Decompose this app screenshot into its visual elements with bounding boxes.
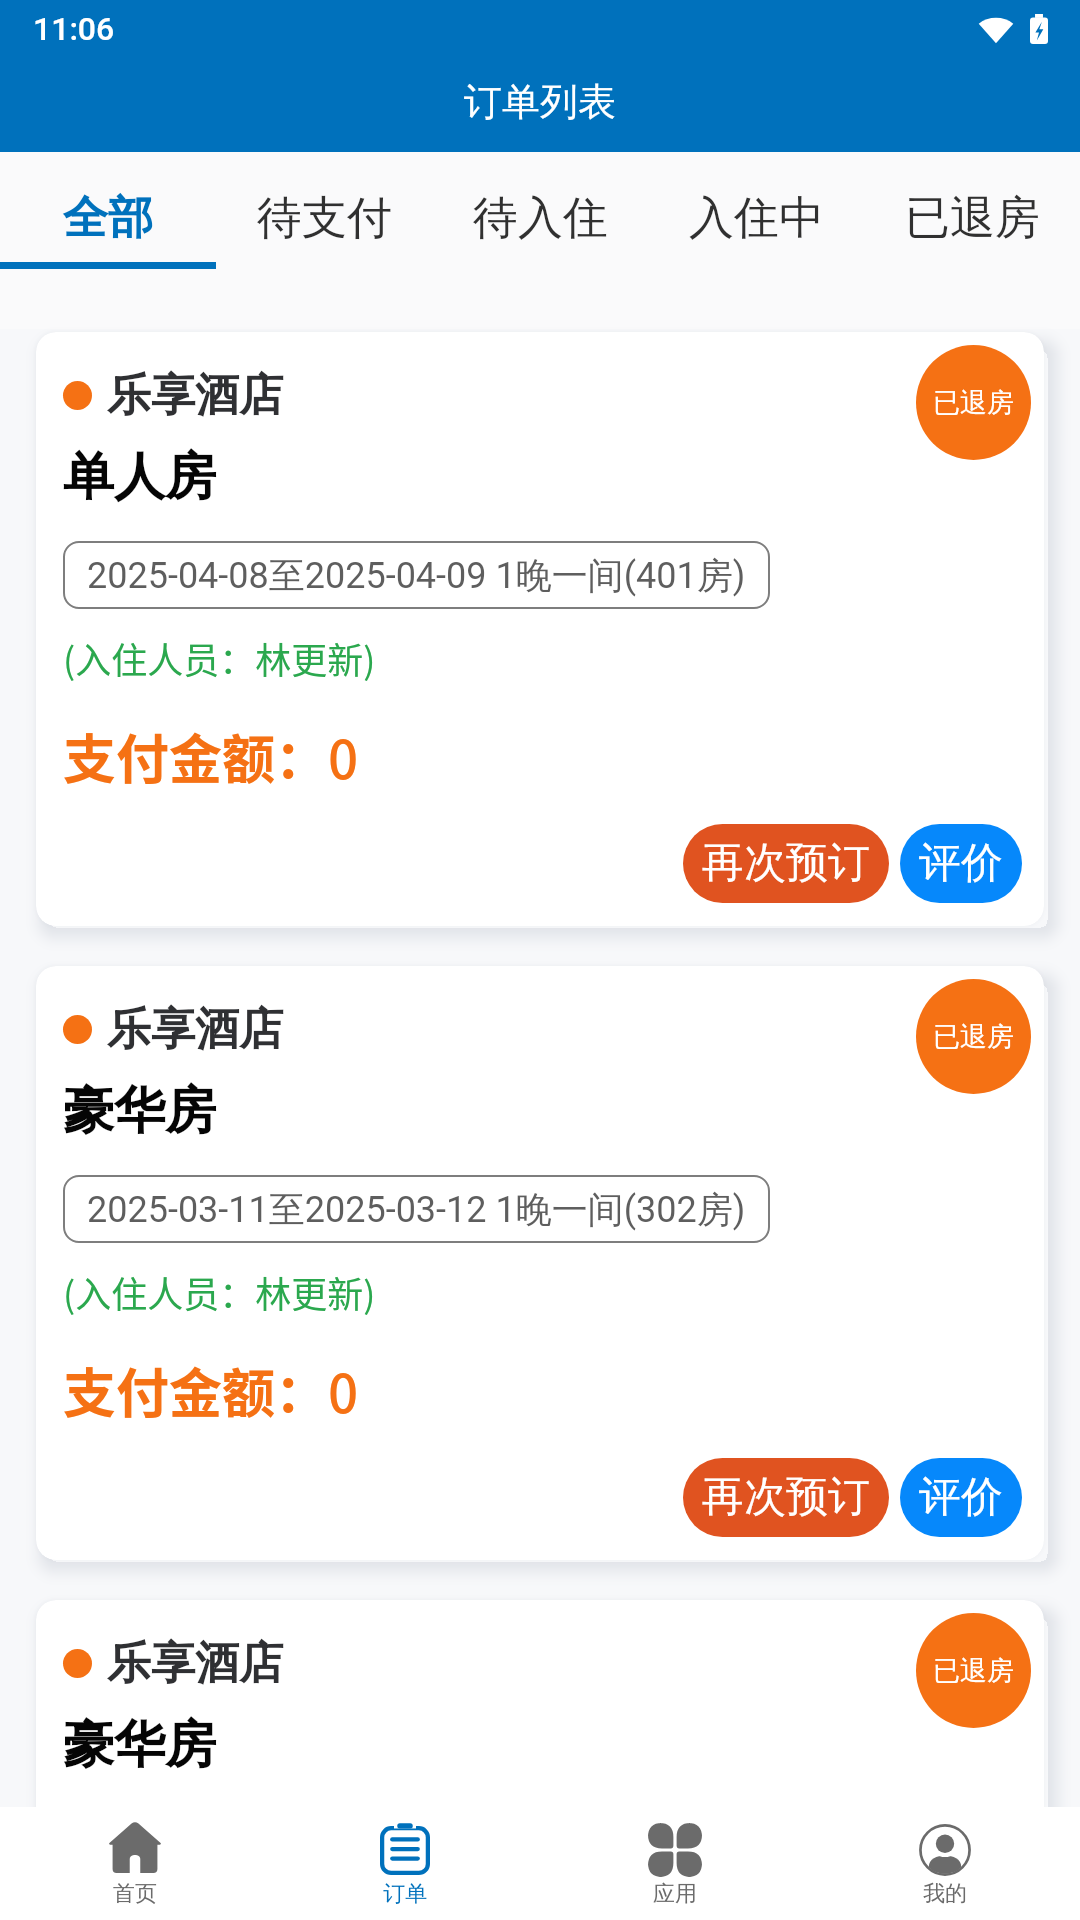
staticText: 2025-02-11至2025-02-12 1晚一间(303房): [87, 1821, 746, 1866]
other: 订单: [380, 1823, 430, 1875]
button[interactable]: 待入住: [432, 152, 648, 329]
staticText: 全部: [63, 190, 153, 247]
staticText: 订单列表: [464, 78, 616, 126]
staticText: 已退房: [933, 386, 1014, 420]
staticText: (入住人员：林更新): [63, 1900, 376, 1920]
staticText: 支付金额：0: [63, 1352, 359, 1429]
staticText: 乐享酒店: [107, 1002, 283, 1057]
staticText: 已退房: [933, 1654, 1014, 1688]
other: 我的: [918, 1823, 972, 1877]
button[interactable]: 我的: [810, 1807, 1080, 1920]
staticText: 再次预订: [702, 1471, 870, 1524]
button[interactable]: 乐享酒店: [36, 1600, 1044, 1920]
staticText: 再次预订: [702, 837, 870, 890]
button[interactable]: 订单: [270, 1807, 540, 1920]
button[interactable]: 已退房: [916, 1613, 1031, 1728]
staticText: 首页: [113, 1880, 157, 1908]
staticText: (入住人员：林更新): [63, 632, 376, 684]
button[interactable]: 首页: [0, 1807, 270, 1920]
staticText: 订单: [383, 1880, 427, 1908]
staticText: 豪华房: [63, 1713, 216, 1777]
staticText: 应用: [653, 1880, 697, 1908]
staticText: 已退房: [933, 1020, 1014, 1054]
button[interactable]: 已退房: [916, 345, 1031, 460]
button[interactable]: 乐享酒店: [36, 966, 1044, 1560]
button[interactable]: 评价: [900, 824, 1022, 903]
button[interactable]: 待支付: [216, 152, 432, 329]
staticText: 入住中: [689, 190, 824, 247]
button[interactable]: 再次预订: [683, 824, 889, 903]
staticText: 我的: [923, 1880, 967, 1908]
button[interactable]: 已退房: [916, 979, 1031, 1094]
staticText: (入住人员：林更新): [63, 1266, 376, 1318]
staticText: 支付金额：0: [63, 718, 359, 795]
button[interactable]: 再次预订: [683, 1458, 889, 1537]
staticText: 待入住: [473, 190, 608, 247]
staticText: 11:06: [33, 10, 115, 48]
staticText: 待支付: [257, 190, 392, 247]
button[interactable]: 乐享酒店: [36, 332, 1044, 926]
staticText: 评价: [919, 837, 1003, 890]
button[interactable]: 已退房: [864, 152, 1080, 329]
staticText: 2025-03-11至2025-03-12 1晚一间(302房): [87, 1187, 746, 1232]
button[interactable]: 全部: [0, 152, 216, 329]
staticText: 乐享酒店: [107, 368, 283, 423]
button[interactable]: 应用: [540, 1807, 810, 1920]
button[interactable]: 评价: [900, 1458, 1022, 1537]
staticText: 2025-04-08至2025-04-09 1晚一间(401房): [87, 553, 746, 598]
other: 应用: [648, 1823, 702, 1877]
staticText: 评价: [919, 1471, 1003, 1524]
staticText: 乐享酒店: [107, 1636, 283, 1691]
staticText: 单人房: [63, 445, 216, 509]
other: Wi-Fi: [978, 15, 1014, 44]
button[interactable]: 入住中: [648, 152, 864, 329]
staticText: 已退房: [905, 190, 1040, 247]
staticText: 豪华房: [63, 1079, 216, 1143]
other: Battery charging: [1030, 14, 1048, 44]
other: 首页: [108, 1823, 162, 1873]
